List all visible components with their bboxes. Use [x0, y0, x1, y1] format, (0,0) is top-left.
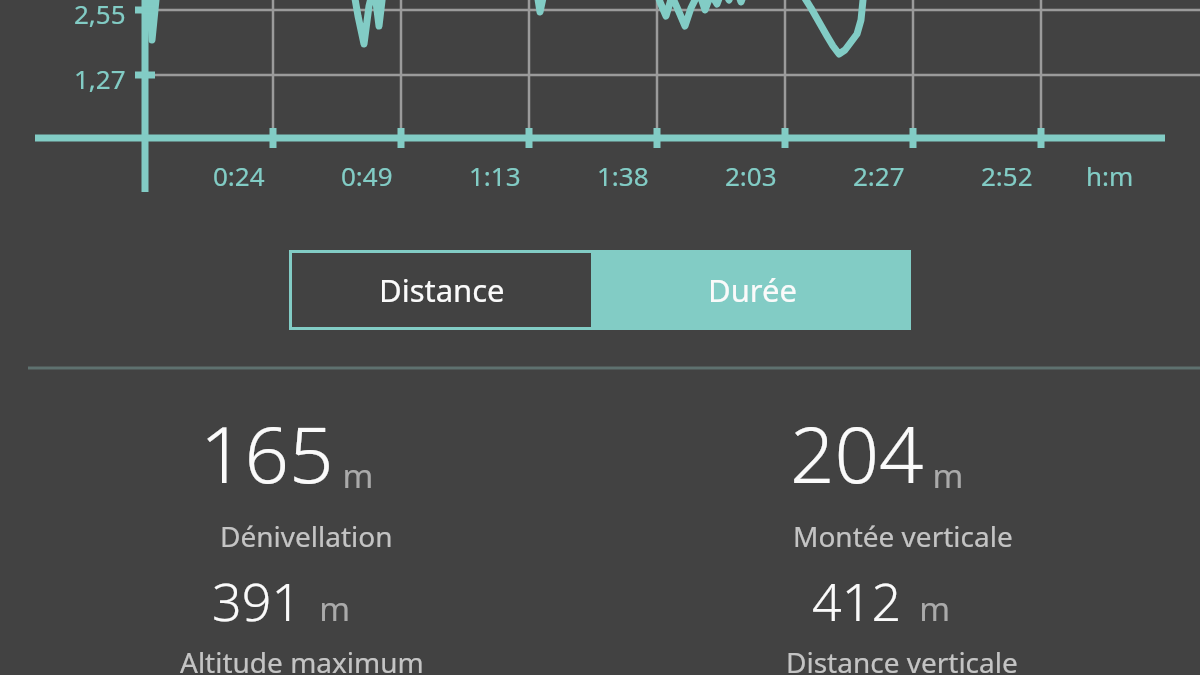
staticText: 165	[200, 400, 334, 506]
staticText: 391	[212, 565, 302, 636]
staticText: 1,27	[74, 61, 126, 96]
staticText: Dénivellation	[220, 517, 393, 555]
staticText: 1:38	[597, 158, 717, 193]
staticText: 2:27	[853, 158, 973, 193]
button[interactable]: Durée	[594, 250, 911, 330]
staticText: m	[302, 586, 351, 631]
staticText: 2,55	[74, 0, 126, 31]
button[interactable]: Distance	[292, 253, 591, 327]
staticText: m	[334, 453, 374, 498]
staticText: h:m	[1086, 158, 1134, 193]
staticText: Montée verticale	[793, 517, 1013, 555]
staticText: Distance verticale	[786, 643, 1018, 675]
staticText: Durée	[708, 269, 797, 311]
staticText: 1:13	[469, 158, 589, 193]
staticText: 204	[790, 400, 924, 506]
staticText: 412	[812, 565, 902, 636]
staticText: 0:24	[213, 158, 333, 193]
staticText: m	[902, 586, 951, 631]
staticText: m	[924, 453, 964, 498]
staticText: Distance	[379, 269, 505, 311]
staticText: 0:49	[341, 158, 461, 193]
staticText: Altitude maximum	[180, 643, 424, 675]
staticText: 2:52	[981, 158, 1101, 193]
staticText: 2:03	[725, 158, 845, 193]
